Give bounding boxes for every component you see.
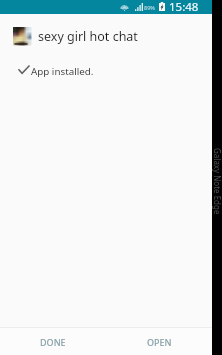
staticText: sexy girl hot chat xyxy=(38,28,138,45)
staticText: 89% xyxy=(144,4,155,11)
staticText: 15:48 xyxy=(169,0,199,13)
staticText: Galaxy Note Edge xyxy=(212,148,222,215)
other: Wi-Fi xyxy=(120,2,129,11)
staticText: DONE xyxy=(40,336,66,348)
other: Battery xyxy=(159,2,165,11)
button[interactable]: OPEN xyxy=(106,328,212,355)
button[interactable]: DONE xyxy=(0,328,106,355)
other: Signal strength xyxy=(135,3,143,11)
staticText: OPEN xyxy=(147,336,172,348)
staticText: App installed. xyxy=(31,65,94,78)
